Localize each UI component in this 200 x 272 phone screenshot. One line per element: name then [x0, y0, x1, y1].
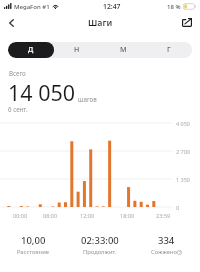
button[interactable]: Д [8, 42, 54, 58]
staticText: ? [179, 250, 181, 255]
staticText: Д [28, 45, 34, 55]
staticText: М [120, 45, 127, 55]
staticText: 06:00 [43, 212, 58, 219]
staticText: Шаги [88, 17, 113, 29]
staticText: 12:47 [103, 2, 121, 11]
button[interactable]: Back [3, 14, 20, 31]
staticText: 0 [176, 204, 180, 211]
staticText: 10,00 [21, 234, 46, 247]
staticText: 18:00 [120, 212, 135, 219]
staticText: 18 % [167, 3, 181, 11]
staticText: 2 700 [176, 148, 191, 155]
staticText: Продолжит. [83, 248, 117, 256]
button[interactable]: Г [146, 42, 192, 58]
button[interactable]: Share [178, 14, 195, 31]
staticText: 1 350 [176, 176, 191, 183]
staticText: MegaFon #1 [14, 3, 50, 11]
staticText: Всего [9, 69, 26, 77]
button[interactable]: 10,00 [0, 234, 66, 256]
staticText: 4 050 [176, 120, 191, 127]
staticText: Н [74, 45, 80, 55]
button[interactable]: М [100, 42, 146, 58]
staticText: Сожжено [151, 248, 177, 256]
staticText: 12:00 [80, 212, 95, 219]
button[interactable]: 334 [133, 234, 200, 256]
staticText: шагов [78, 95, 97, 103]
button[interactable]: 02:33:00 [66, 234, 133, 256]
button[interactable]: Н [54, 42, 100, 58]
staticText: 00:00 [13, 212, 28, 219]
staticText: 14 050 [8, 78, 76, 107]
staticText: Расстояние [17, 248, 49, 256]
staticText: 02:33:00 [81, 234, 119, 247]
staticText: 6 сент. [8, 105, 28, 113]
staticText: Г [167, 45, 171, 55]
staticText: 334 [158, 234, 175, 247]
staticText: 23:59 [156, 212, 171, 219]
